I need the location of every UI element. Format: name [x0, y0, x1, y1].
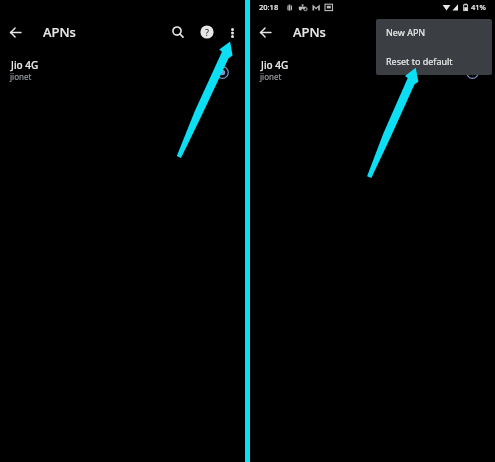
button[interactable]: Jio 4G — [250, 55, 495, 87]
button[interactable]: Navigate up — [255, 22, 276, 43]
staticText: ? — [205, 26, 210, 38]
button[interactable]: Reset to default — [376, 47, 492, 75]
staticText: Reset to default — [386, 55, 453, 67]
button[interactable]: Search — [167, 21, 189, 43]
staticText: Jio 4G — [261, 58, 289, 72]
staticText: jionet — [10, 71, 32, 82]
button[interactable]: Help — [196, 21, 218, 43]
staticText: 20:18 — [259, 2, 279, 12]
button[interactable]: Jio 4G — [0, 55, 245, 87]
staticText: Jio 4G — [11, 58, 39, 72]
staticText: jionet — [260, 71, 282, 82]
button[interactable]: More options — [222, 21, 243, 42]
staticText: APNs — [43, 23, 76, 41]
button[interactable]: New APN — [376, 19, 492, 47]
staticText: APNs — [293, 23, 326, 41]
button[interactable]: Navigate up — [5, 22, 26, 43]
staticText: 41% — [471, 2, 486, 12]
staticText: New APN — [386, 26, 426, 38]
